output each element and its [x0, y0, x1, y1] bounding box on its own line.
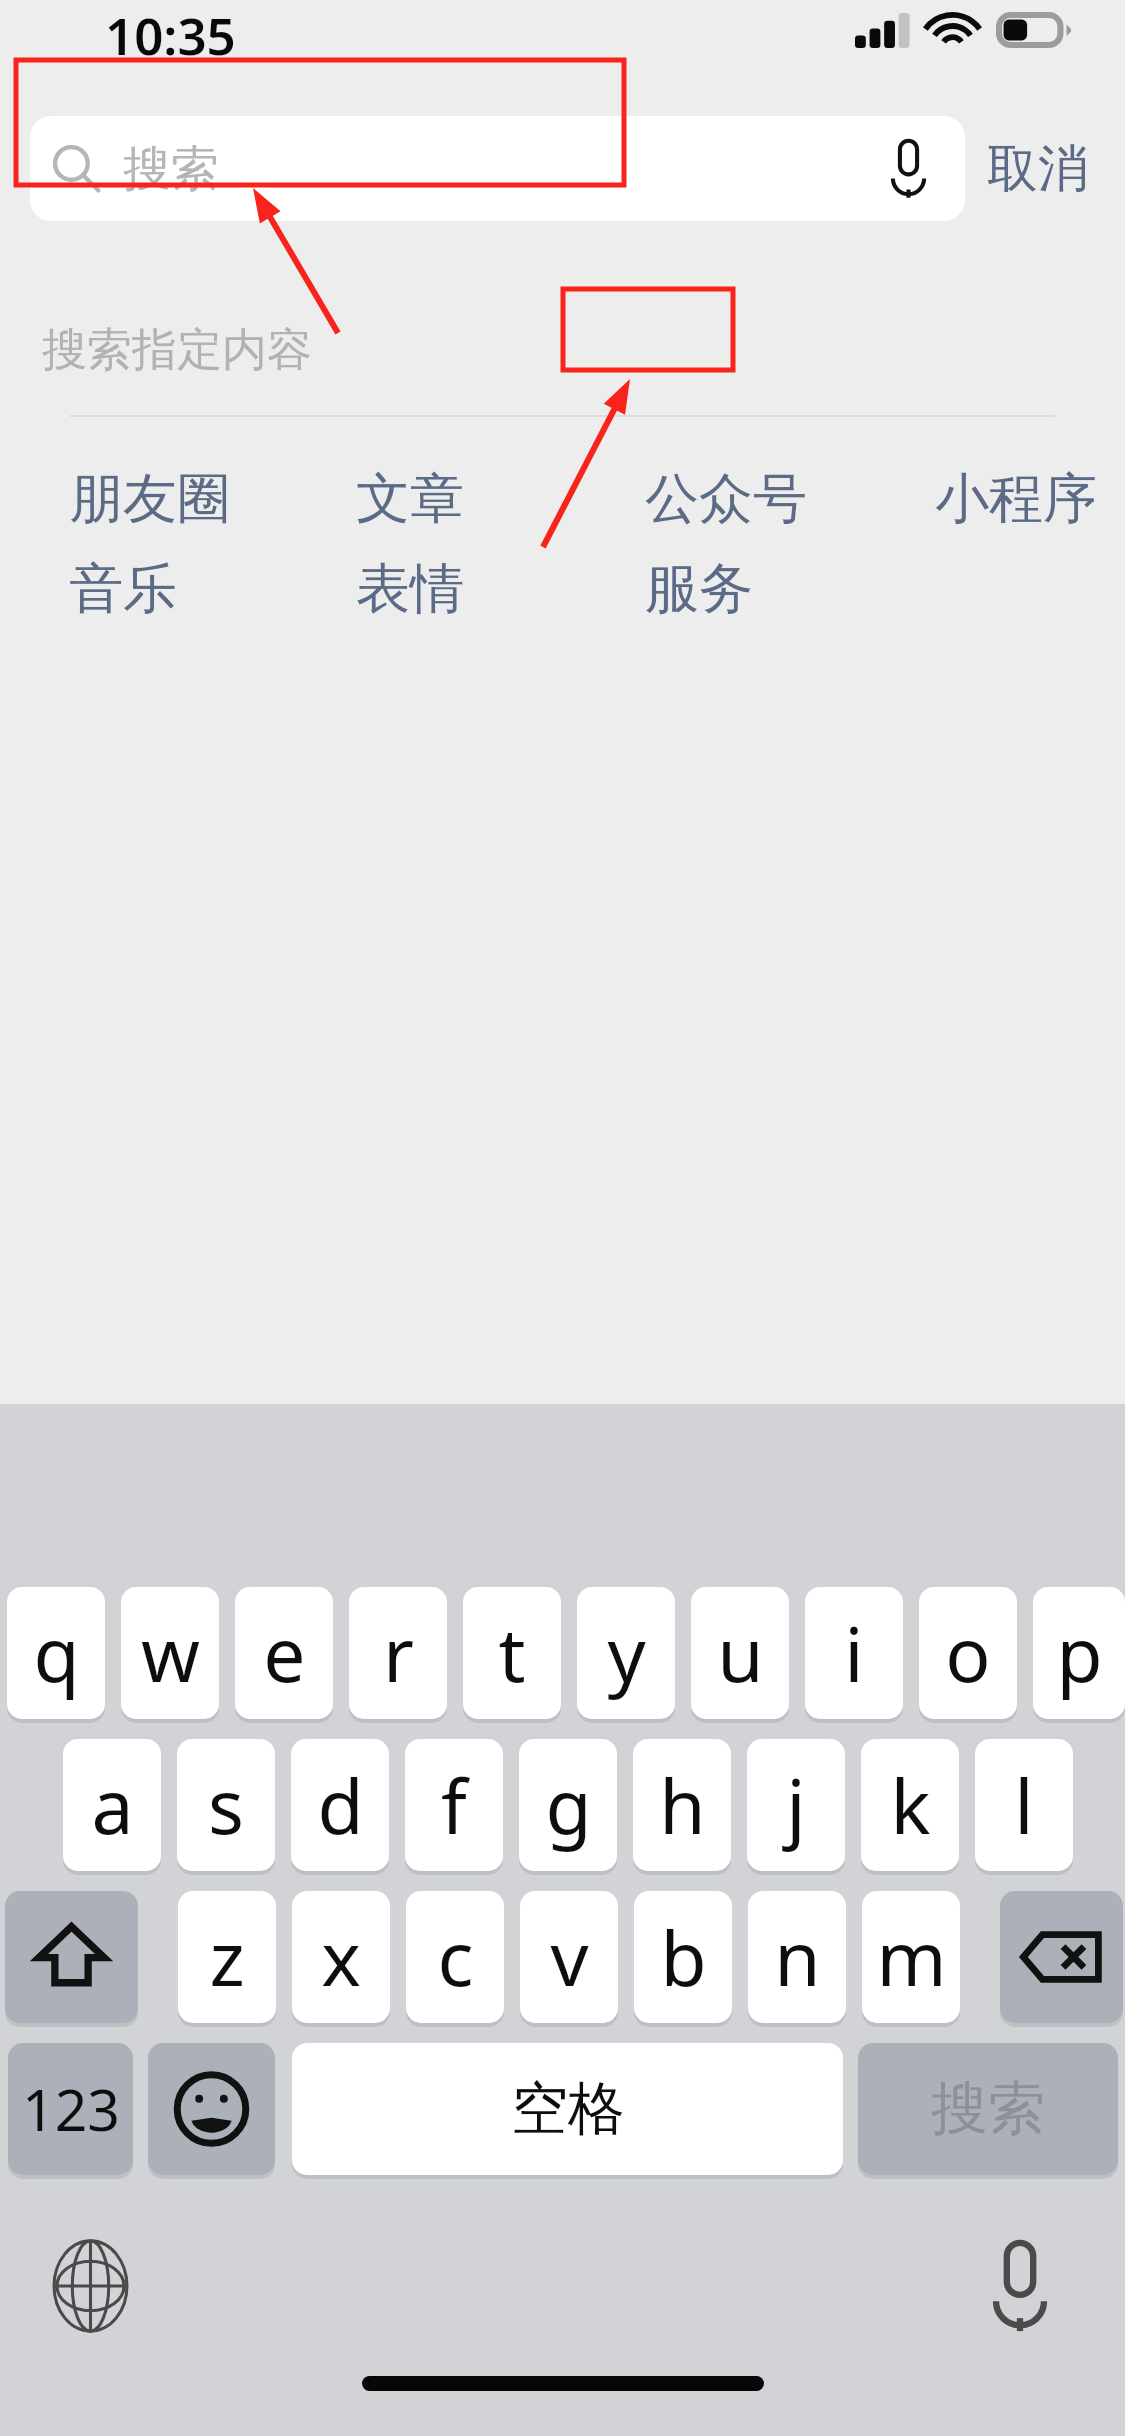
button[interactable]: m	[862, 1891, 960, 2023]
staticText: p	[1056, 1602, 1103, 1704]
button[interactable]: v	[520, 1891, 618, 2023]
staticText: a	[91, 1754, 134, 1856]
staticText: b	[660, 1906, 707, 2008]
button[interactable]: d	[291, 1739, 389, 1871]
button[interactable]: i	[805, 1587, 903, 1719]
button[interactable]: o	[919, 1587, 1017, 1719]
button[interactable]: q	[7, 1587, 105, 1719]
button[interactable]: y	[577, 1587, 675, 1719]
staticText: 公众号	[645, 465, 807, 533]
button[interactable]: b	[634, 1891, 732, 2023]
button[interactable]: a	[63, 1739, 161, 1871]
staticText: 空格	[511, 2073, 625, 2145]
button[interactable]: x	[292, 1891, 390, 2023]
staticText: 服务	[645, 555, 753, 623]
button[interactable]: 文章	[350, 459, 470, 539]
button[interactable]: 小程序	[929, 459, 1103, 539]
button[interactable]: 搜索	[858, 2043, 1118, 2175]
button[interactable]: 服务	[639, 549, 759, 629]
button[interactable]: w	[121, 1587, 219, 1719]
button[interactable]: u	[691, 1587, 789, 1719]
staticText: h	[659, 1754, 706, 1856]
button[interactable]: Emoji	[148, 2043, 275, 2175]
staticText: c	[437, 1906, 474, 2008]
button[interactable]: Backspace	[1000, 1891, 1123, 2023]
button[interactable]: 123	[8, 2043, 133, 2175]
button[interactable]: 空格	[292, 2043, 843, 2175]
button[interactable]: 搜索	[30, 116, 965, 221]
staticText: s	[208, 1754, 244, 1856]
button[interactable]: 音乐	[63, 549, 183, 629]
staticText: f	[441, 1754, 467, 1856]
button[interactable]: z	[178, 1891, 276, 2023]
staticText: y	[607, 1602, 646, 1704]
staticText: g	[545, 1754, 592, 1856]
staticText: 文章	[356, 465, 464, 533]
button[interactable]: n	[748, 1891, 846, 2023]
staticText: j	[786, 1754, 806, 1856]
button[interactable]: Voice search	[875, 136, 941, 202]
staticText: i	[844, 1602, 864, 1704]
staticText: u	[717, 1602, 764, 1704]
staticText: l	[1014, 1754, 1034, 1856]
button[interactable]: j	[747, 1739, 845, 1871]
staticText: 朋友圈	[69, 465, 231, 533]
button[interactable]: 公众号	[639, 459, 813, 539]
staticText: q	[33, 1602, 80, 1704]
staticText: 小程序	[935, 465, 1097, 533]
staticText: r	[383, 1602, 414, 1704]
staticText: 10:35	[105, 0, 236, 60]
button[interactable]: r	[349, 1587, 447, 1719]
staticText: 123	[22, 2070, 120, 2148]
staticText: d	[317, 1754, 364, 1856]
button[interactable]: Switch keyboard	[30, 2226, 150, 2346]
staticText: w	[141, 1602, 200, 1704]
button[interactable]: f	[405, 1739, 503, 1871]
button[interactable]: l	[975, 1739, 1073, 1871]
button[interactable]: e	[235, 1587, 333, 1719]
staticText: 搜索	[123, 139, 219, 199]
staticText: 音乐	[69, 555, 177, 623]
staticText: t	[498, 1602, 526, 1704]
staticText: 搜索指定内容	[42, 322, 312, 379]
staticText: e	[263, 1602, 306, 1704]
staticText: 取消	[987, 137, 1089, 201]
staticText: 搜索	[931, 2073, 1045, 2145]
staticText: 表情	[356, 555, 464, 623]
staticText: o	[945, 1602, 991, 1704]
staticText: x	[321, 1906, 361, 2008]
button[interactable]: 取消	[965, 116, 1110, 221]
button[interactable]: 朋友圈	[63, 459, 237, 539]
button[interactable]: Dictation	[960, 2226, 1080, 2346]
staticText: n	[774, 1906, 821, 2008]
button[interactable]: p	[1033, 1587, 1125, 1719]
button[interactable]: h	[633, 1739, 731, 1871]
staticText: k	[890, 1754, 931, 1856]
staticText: v	[550, 1906, 589, 2008]
button[interactable]: s	[177, 1739, 275, 1871]
button[interactable]: 表情	[350, 549, 470, 629]
button[interactable]: c	[406, 1891, 504, 2023]
button[interactable]: g	[519, 1739, 617, 1871]
staticText: z	[209, 1906, 245, 2008]
button[interactable]: k	[861, 1739, 959, 1871]
button[interactable]: Shift	[5, 1891, 138, 2023]
staticText: m	[876, 1906, 947, 2008]
button[interactable]: t	[463, 1587, 561, 1719]
